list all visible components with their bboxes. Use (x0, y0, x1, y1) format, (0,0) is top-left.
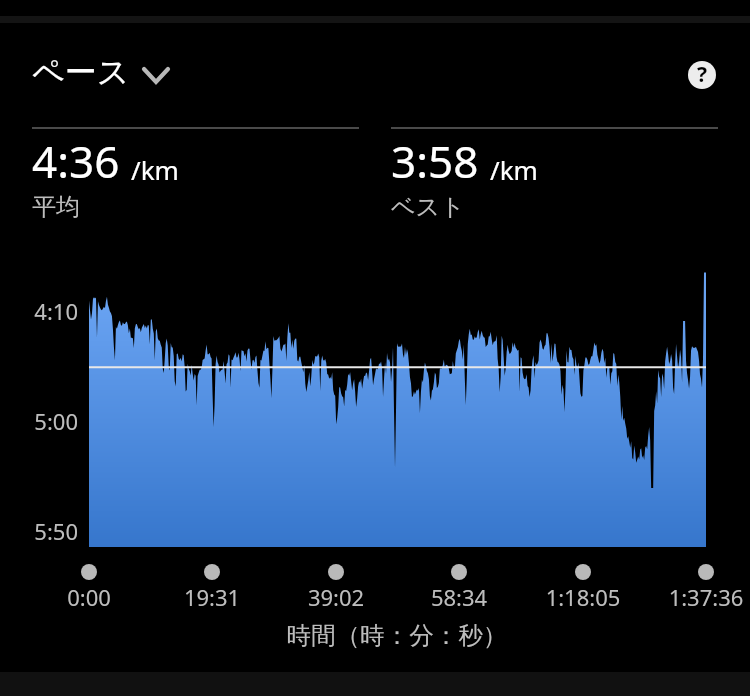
staticText: 3:58 (391, 131, 479, 191)
button[interactable]: Help (674, 47, 730, 103)
staticText: ? (697, 61, 708, 88)
staticText: /km (131, 152, 179, 187)
staticText: 0:00 (29, 582, 149, 612)
staticText: 5:00 (1, 406, 78, 436)
staticText: 4:36 (32, 131, 120, 191)
staticText: 4:10 (1, 296, 78, 326)
staticText: /km (490, 152, 538, 187)
staticText: ペース (32, 52, 130, 92)
staticText: 58:34 (399, 582, 519, 612)
staticText: 1:18:05 (523, 582, 643, 612)
staticText: 5:50 (1, 516, 78, 546)
staticText: ベスト (391, 192, 465, 222)
staticText: 平均 (32, 192, 80, 222)
button[interactable]: ペース (32, 52, 168, 92)
staticText: 39:02 (276, 582, 396, 612)
staticText: 1:37:36 (646, 582, 750, 612)
staticText: 時間（時：分：秒） (22, 620, 750, 651)
staticText: 19:31 (152, 582, 272, 612)
